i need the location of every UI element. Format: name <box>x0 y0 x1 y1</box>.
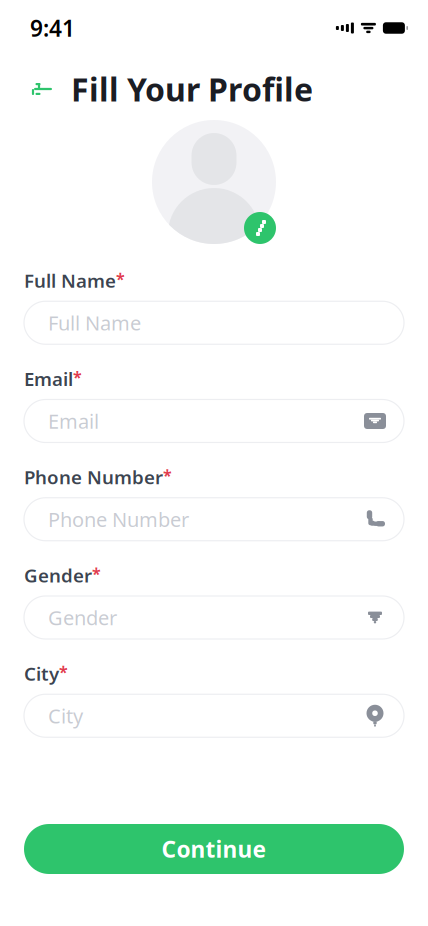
staticText: 9:41 <box>30 13 75 43</box>
button[interactable]: Phone Number <box>24 498 404 541</box>
staticText: Email <box>24 366 73 391</box>
staticText: Gender <box>24 563 92 588</box>
staticText: Gender <box>48 604 117 631</box>
button[interactable]: Change profile photo <box>152 120 276 244</box>
staticText: * <box>73 366 82 387</box>
staticText: Email <box>48 408 99 434</box>
button[interactable]: City <box>24 694 404 737</box>
staticText: Continue <box>161 834 266 864</box>
button[interactable]: Gender <box>24 596 404 639</box>
staticText: City <box>48 702 83 729</box>
staticText: Phone Number <box>48 506 189 533</box>
button[interactable]: Back <box>24 72 58 106</box>
staticText: City <box>24 661 59 686</box>
staticText: Full Name <box>24 268 116 293</box>
button[interactable]: Continue <box>24 824 404 874</box>
staticText: Full Name <box>48 309 141 336</box>
staticText: * <box>116 268 125 289</box>
button[interactable]: Full Name <box>24 301 404 344</box>
staticText: Phone Number <box>24 465 163 489</box>
button[interactable]: Email <box>24 399 404 442</box>
staticText: * <box>163 464 172 486</box>
staticText: * <box>92 563 101 584</box>
staticText: Fill Your Profile <box>71 68 313 110</box>
staticText: * <box>59 661 68 682</box>
